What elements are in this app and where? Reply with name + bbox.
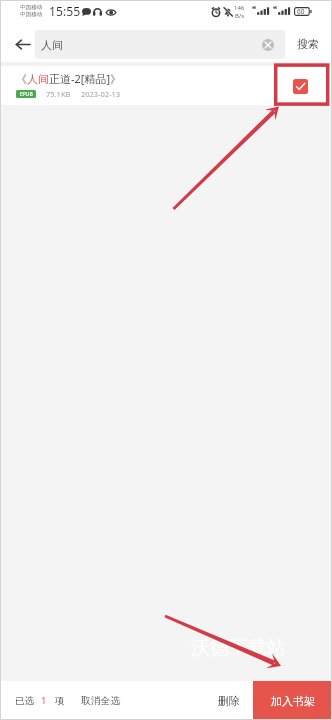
staticText: 60 bbox=[297, 7, 305, 16]
button[interactable]: 《人间正道-2[精品]》 bbox=[0, 66, 332, 105]
button[interactable]: 加入书架 bbox=[253, 681, 332, 720]
button[interactable]: Selected bbox=[285, 66, 315, 105]
staticText: EPUB bbox=[20, 91, 33, 98]
staticText: 搜索 bbox=[297, 37, 319, 51]
staticText: 已选 bbox=[15, 695, 34, 707]
staticText: 2023-02-13 bbox=[81, 89, 121, 99]
button[interactable]: Back bbox=[7, 26, 37, 62]
button[interactable]: Clear text bbox=[262, 39, 274, 51]
staticText: 15:55 bbox=[49, 3, 81, 20]
staticText: 中国移动 bbox=[20, 4, 43, 11]
staticText: B/s bbox=[235, 12, 245, 20]
staticText: 加入书架 bbox=[271, 694, 315, 708]
staticText: 75.1KB bbox=[46, 89, 71, 99]
staticText: 1 bbox=[41, 694, 47, 707]
staticText: 中国移动 bbox=[20, 11, 43, 18]
staticText: 《人间正道-2[精品]》 bbox=[16, 71, 122, 86]
staticText: 146 bbox=[234, 4, 245, 12]
button[interactable]: 人间 bbox=[35, 30, 285, 59]
button[interactable]: 搜索 bbox=[288, 26, 328, 62]
button[interactable]: 删除 bbox=[206, 681, 251, 720]
staticText: 项 bbox=[55, 695, 65, 707]
staticText: 沃德下载站 bbox=[191, 636, 286, 660]
button[interactable]: 取消全选 bbox=[80, 681, 122, 720]
staticText: 人间 bbox=[41, 38, 63, 52]
staticText: 删除 bbox=[218, 694, 240, 708]
staticText: 取消全选 bbox=[81, 695, 121, 707]
